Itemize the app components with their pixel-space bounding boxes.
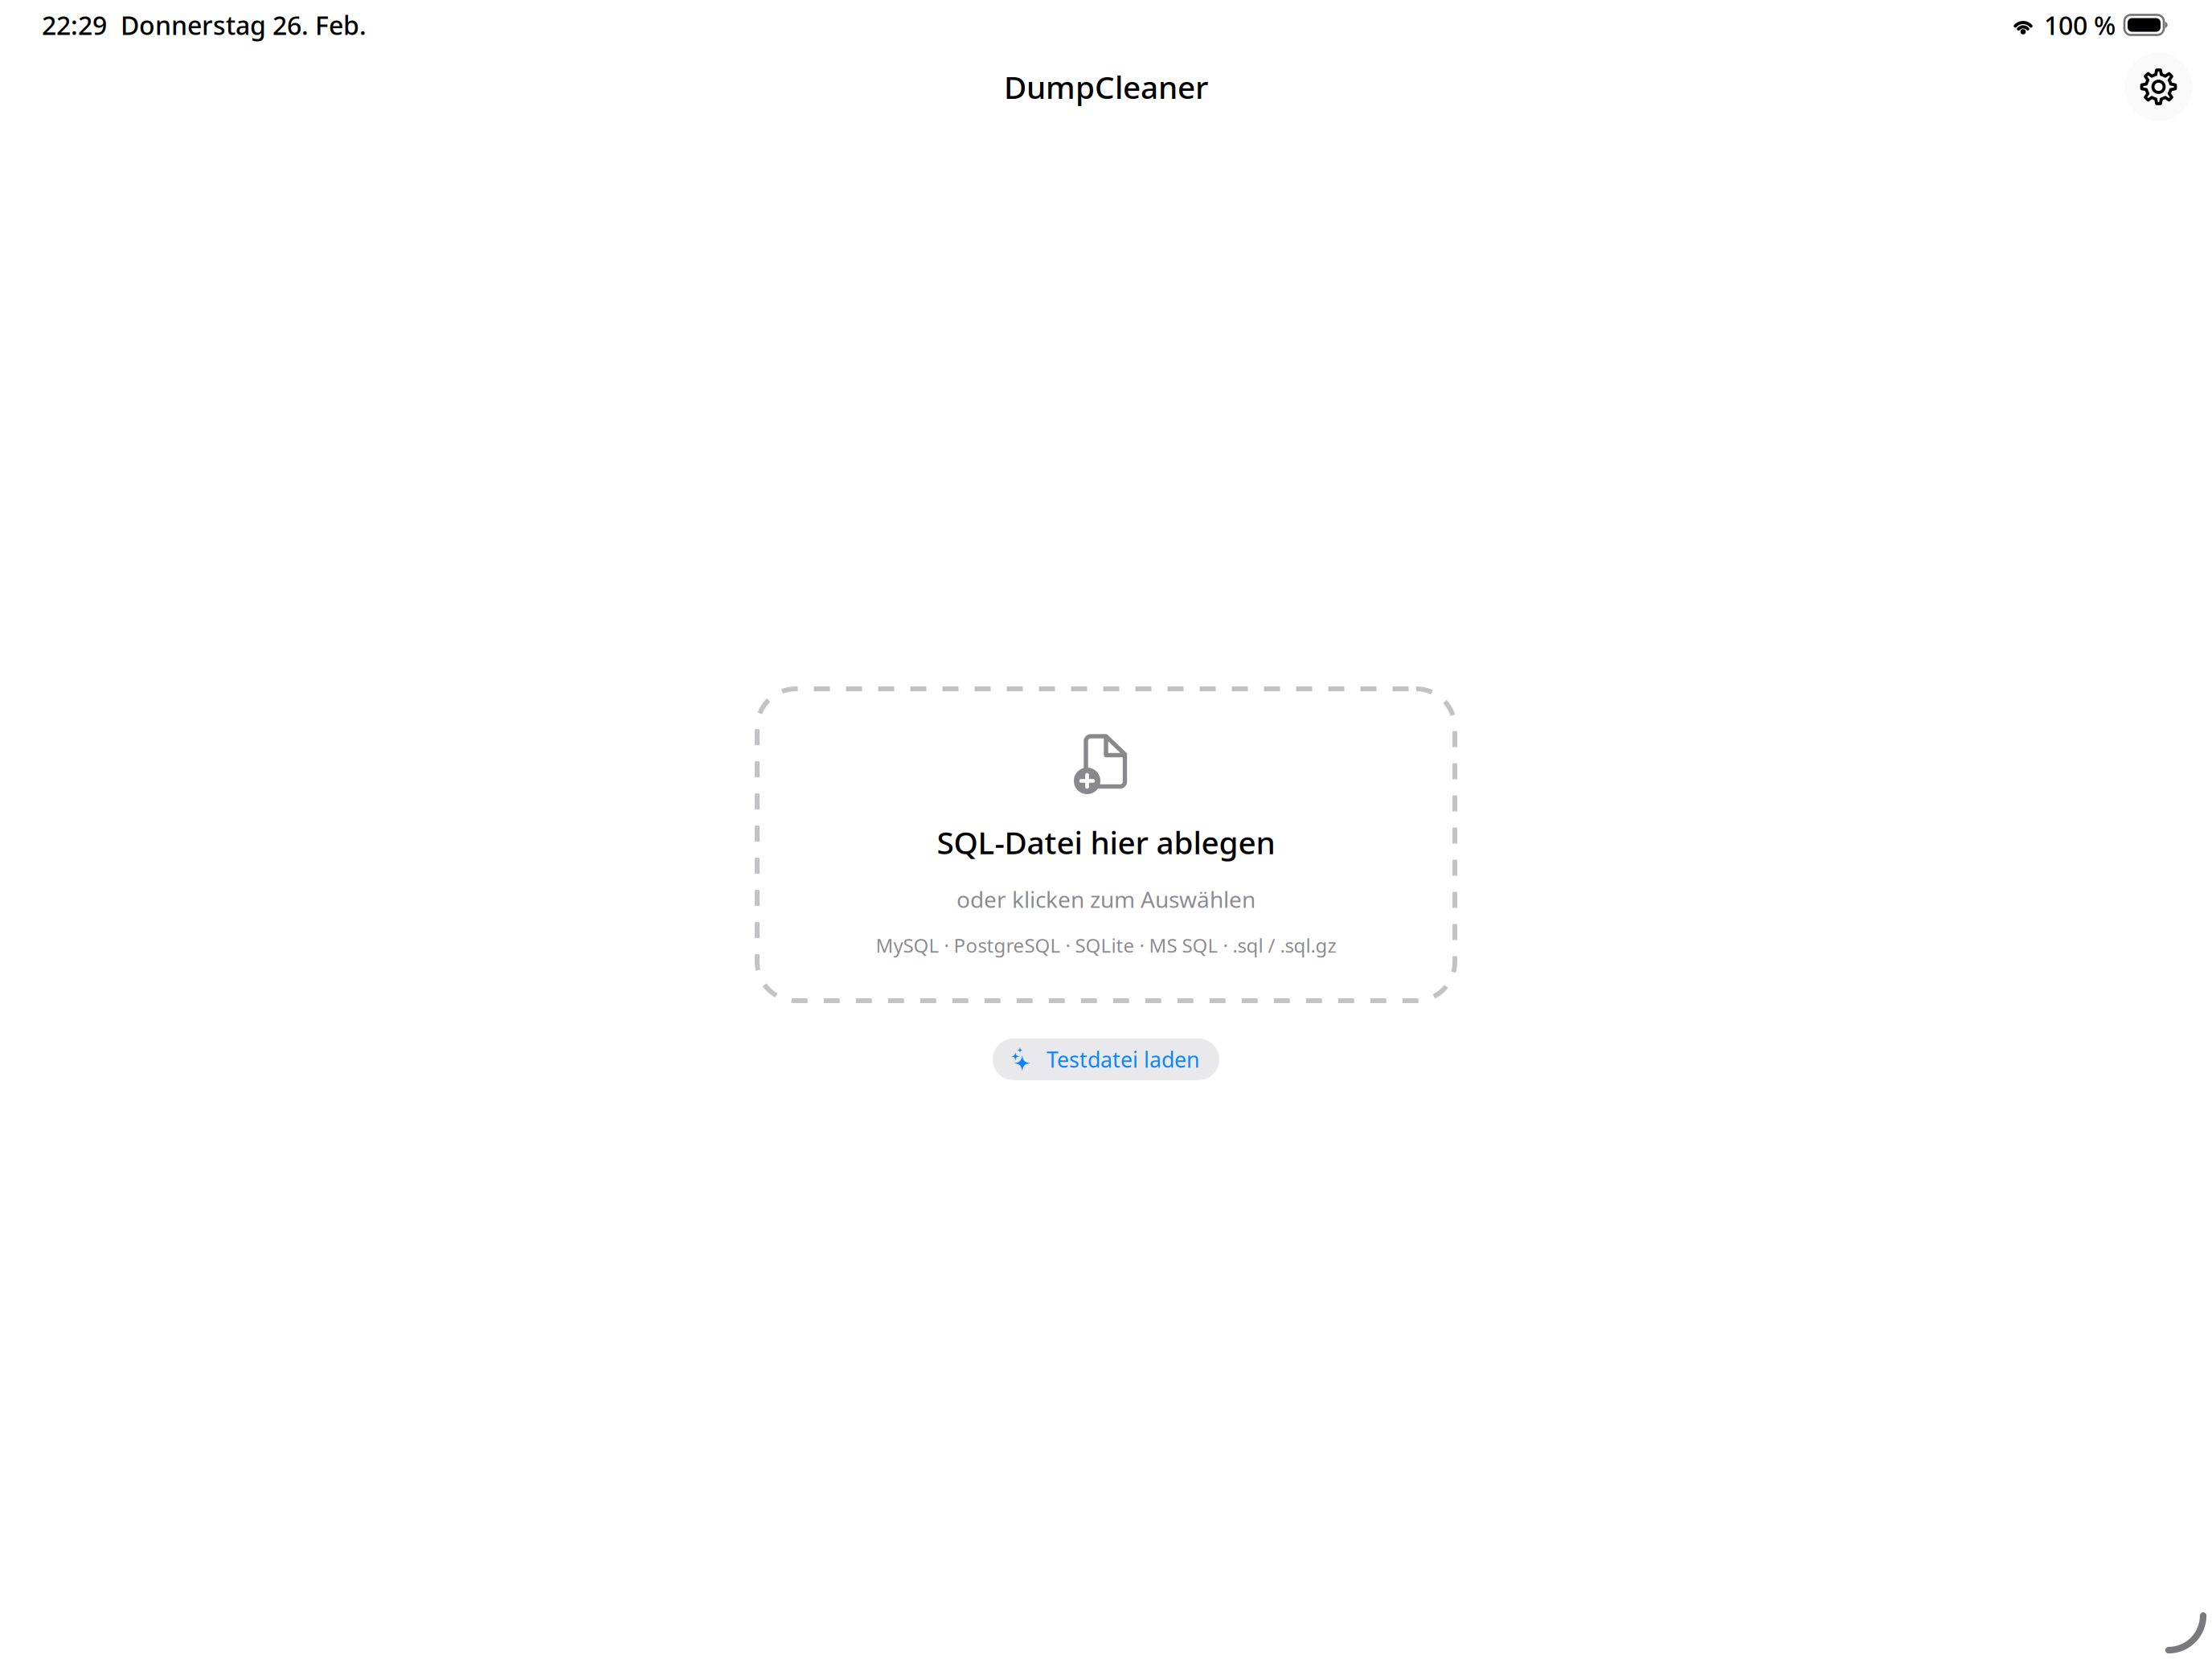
button[interactable]: Einstellungen [2124,53,2193,121]
staticText: Donnerstag 26. Feb. [121,8,367,42]
staticText: MySQL · PostgreSQL · SQLite · MS SQL · .… [876,932,1336,958]
staticText: Testdatei laden [1047,1045,1199,1074]
staticText: SQL-Datei hier ablegen [937,821,1275,863]
staticText: oder klicken zum Auswählen [956,884,1256,914]
staticText: 100 % [2044,8,2116,42]
button[interactable]: SQL-Datei hier ablegen [755,686,1457,1003]
staticText: 22:29 [42,8,107,42]
button[interactable]: Testdatei laden [993,1038,1219,1080]
staticText: DumpCleaner [1004,66,1208,107]
